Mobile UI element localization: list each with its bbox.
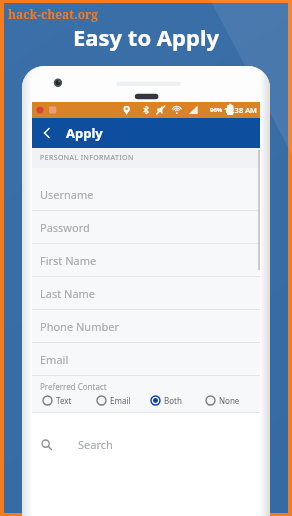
staticText: Search (78, 437, 113, 452)
button[interactable]: Username (32, 178, 260, 211)
staticText: Phone Number (40, 319, 119, 334)
button[interactable]: Both (150, 395, 205, 406)
button[interactable]: Email (32, 343, 260, 376)
button[interactable]: Email (96, 395, 150, 406)
staticText: Apply (66, 124, 103, 142)
button[interactable]: Last Name (32, 277, 260, 310)
staticText: Preferred Contact (40, 381, 107, 392)
staticText: Password (40, 220, 90, 235)
staticText: 96% (210, 106, 223, 114)
staticText: PERSONAL INFORMATION (40, 153, 134, 163)
button[interactable]: Password (32, 211, 260, 244)
staticText: Both (164, 395, 182, 406)
button[interactable]: Search (32, 429, 260, 459)
staticText: Text (56, 395, 72, 406)
staticText: None (219, 395, 240, 406)
staticText: Email (40, 352, 69, 367)
staticText: hack-cheat.org (8, 6, 99, 22)
staticText: Email (110, 395, 131, 406)
button[interactable]: Phone Number (32, 310, 260, 343)
button[interactable]: First Name (32, 244, 260, 277)
staticText: First Name (40, 253, 97, 268)
button[interactable]: None (205, 395, 260, 406)
staticText: Username (40, 187, 94, 202)
staticText: Easy to Apply (0, 22, 292, 52)
staticText: Last Name (40, 286, 96, 301)
button[interactable]: Text (42, 395, 96, 406)
button[interactable]: Back (32, 118, 62, 148)
staticText: 10:38 AM (224, 105, 257, 115)
